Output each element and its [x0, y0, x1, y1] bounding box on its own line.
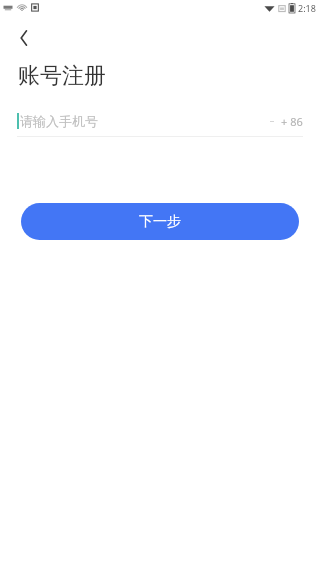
button[interactable]: Back — [6, 20, 42, 56]
button[interactable]: 请输入手机号 — [17, 108, 303, 134]
staticText: + 86 — [281, 114, 303, 129]
button[interactable]: 下一步 — [21, 203, 299, 240]
staticText: 账号注册 — [18, 62, 106, 90]
staticText: 下一步 — [139, 213, 181, 231]
staticText: 2:18 — [298, 2, 316, 14]
staticText: 请输入手机号 — [20, 113, 98, 129]
